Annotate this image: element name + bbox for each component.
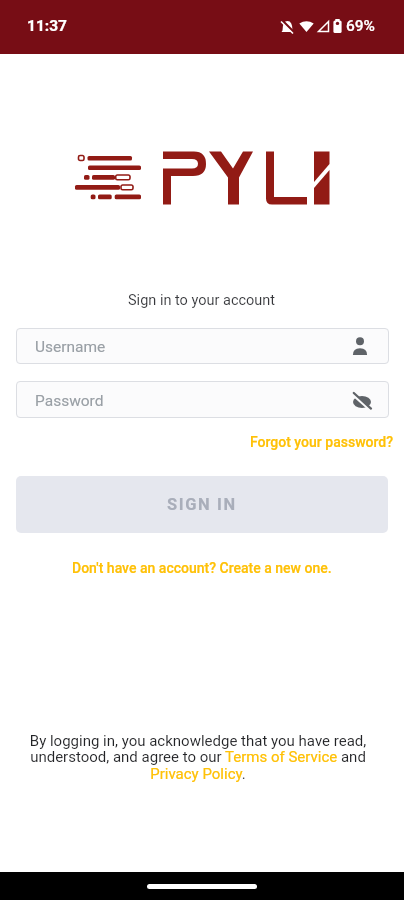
button[interactable]: Username [16,328,389,364]
button[interactable]: Don't have an account? Create a new one. [72,560,332,576]
button[interactable]: By logging in, you acknowledge that you … [0,732,400,783]
staticText: SIGN IN [167,495,237,514]
staticText: Sign in to your account [128,292,276,309]
staticText: 69% [346,17,376,35]
button[interactable]: SIGN IN [16,476,388,533]
button[interactable]: Forgot your password? [250,434,394,450]
button[interactable]: Password [16,381,389,418]
staticText: 11:37 [27,17,67,35]
staticText: Password [35,392,104,410]
staticText: Username [35,338,106,356]
